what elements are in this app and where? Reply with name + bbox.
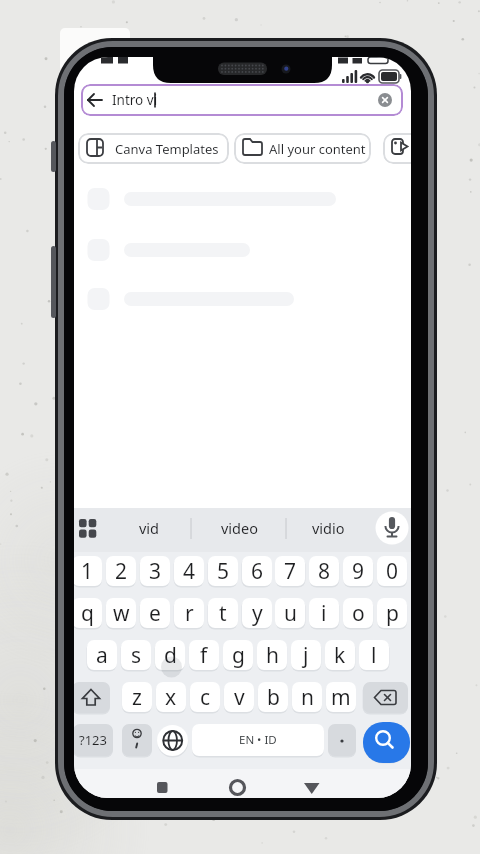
button[interactable]	[145, 771, 179, 798]
button[interactable]: Canva Templates	[78, 133, 229, 164]
button[interactable]: 3	[140, 556, 170, 586]
button[interactable]: 1	[74, 556, 102, 586]
staticText: w	[113, 599, 130, 628]
button[interactable]: vidio	[288, 515, 368, 541]
button[interactable]	[74, 682, 110, 713]
staticText: 4	[183, 557, 196, 586]
button[interactable]: r	[174, 598, 204, 628]
staticText: h	[266, 641, 279, 670]
staticText: n	[301, 683, 314, 712]
button[interactable]	[363, 722, 410, 763]
staticText: q	[81, 599, 94, 628]
staticText: p	[386, 599, 399, 628]
staticText: r	[185, 599, 194, 628]
button[interactable]	[375, 511, 409, 545]
button[interactable]: All your content	[234, 133, 371, 164]
staticText: u	[284, 599, 297, 628]
button[interactable]: 0	[377, 556, 407, 586]
button[interactable]: 8	[309, 556, 339, 586]
button[interactable]: q	[74, 598, 102, 628]
staticText: vidio	[312, 518, 345, 538]
button[interactable]: w	[106, 598, 136, 628]
button[interactable]: d	[155, 640, 185, 670]
staticText: Intro vi	[112, 91, 158, 109]
button[interactable]	[221, 771, 255, 798]
button[interactable]: p	[377, 598, 407, 628]
staticText: 9	[352, 557, 365, 586]
button[interactable]: e	[140, 598, 170, 628]
button[interactable]: EN • ID	[192, 724, 324, 756]
staticText: j	[303, 641, 309, 670]
button[interactable]	[157, 725, 188, 756]
button[interactable]: a	[87, 640, 117, 670]
button[interactable]: b	[258, 682, 288, 712]
staticText: 2	[115, 557, 128, 586]
button[interactable]: 2	[106, 556, 136, 586]
button[interactable]	[81, 84, 403, 116]
button[interactable]: 7	[275, 556, 305, 586]
staticText: video	[221, 518, 258, 538]
button[interactable]: n	[292, 682, 322, 712]
button[interactable]: h	[257, 640, 287, 670]
button[interactable]: 6	[242, 556, 272, 586]
button[interactable]: g	[223, 640, 253, 670]
staticText: c	[200, 683, 211, 712]
button[interactable]	[79, 84, 111, 116]
staticText: z	[132, 683, 142, 712]
button[interactable]: m	[326, 682, 356, 712]
staticText: 5	[217, 557, 230, 586]
staticText: o	[352, 599, 365, 628]
button[interactable]	[363, 682, 408, 713]
staticText: b	[267, 683, 280, 712]
button[interactable]: u	[275, 598, 305, 628]
staticText: x	[165, 683, 177, 712]
button[interactable]: c	[190, 682, 220, 712]
button[interactable]: 9	[343, 556, 373, 586]
staticText: y	[252, 599, 263, 628]
staticText: l	[371, 641, 377, 670]
staticText: 8	[318, 557, 331, 586]
button[interactable]	[328, 724, 356, 756]
staticText: m	[331, 683, 351, 712]
button[interactable]: k	[325, 640, 355, 670]
button[interactable]: ?123	[74, 724, 113, 756]
button[interactable]: s	[121, 640, 151, 670]
staticText: 0	[386, 557, 399, 586]
staticText: g	[232, 641, 245, 670]
button[interactable]: j	[291, 640, 321, 670]
button[interactable]: 5	[208, 556, 238, 586]
button[interactable]: x	[156, 682, 186, 712]
button[interactable]: i	[309, 598, 339, 628]
staticText: EN • ID	[239, 732, 277, 748]
button[interactable]	[74, 510, 104, 548]
button[interactable]: y	[242, 598, 272, 628]
button[interactable]: t	[208, 598, 238, 628]
button[interactable]	[122, 724, 152, 756]
staticText: 6	[251, 557, 264, 586]
button[interactable]: 4	[174, 556, 204, 586]
button[interactable]: video	[199, 515, 279, 541]
staticText: vid	[139, 518, 160, 538]
staticText: 7	[284, 557, 297, 586]
button[interactable]: f	[189, 640, 219, 670]
staticText: Canva Templates	[115, 140, 219, 158]
button[interactable]: z	[122, 682, 152, 712]
staticText: 1	[81, 557, 94, 586]
button[interactable]: l	[359, 640, 389, 670]
staticText: v	[234, 683, 245, 712]
staticText: k	[334, 641, 346, 670]
staticText: e	[149, 599, 161, 628]
button[interactable]: vid	[109, 515, 189, 541]
button[interactable]	[383, 133, 411, 164]
staticText: All your content	[269, 140, 366, 158]
staticText: d	[164, 641, 177, 670]
button[interactable]: v	[224, 682, 254, 712]
staticText: t	[219, 599, 227, 628]
staticText: a	[96, 641, 108, 670]
staticText: f	[200, 641, 208, 670]
staticText: i	[321, 599, 327, 628]
button[interactable]	[369, 84, 401, 116]
button[interactable]: o	[343, 598, 373, 628]
button[interactable]	[295, 771, 329, 798]
staticText: ?123	[79, 731, 107, 749]
